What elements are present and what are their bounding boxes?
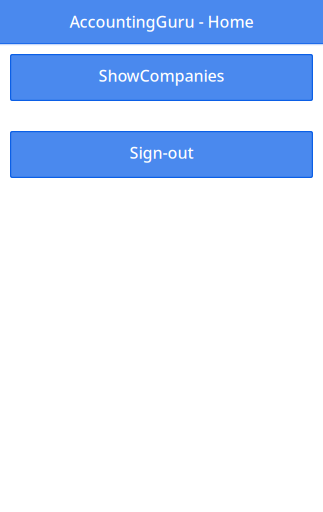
staticText: AccountingGuru - Home <box>69 11 253 32</box>
button[interactable]: Sign-out <box>10 131 313 178</box>
staticText: Sign-out <box>129 142 193 163</box>
button[interactable]: ShowCompanies <box>10 54 313 101</box>
staticText: ShowCompanies <box>98 65 224 86</box>
